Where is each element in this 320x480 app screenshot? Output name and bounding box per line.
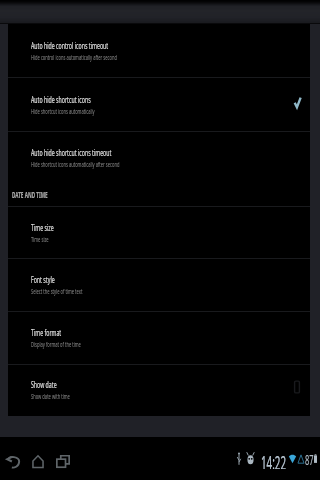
staticText: Font style bbox=[31, 273, 55, 285]
staticText: Auto hide control icons timeout bbox=[31, 39, 109, 51]
button[interactable]: Auto hide shortcut icons bbox=[8, 78, 310, 131]
staticText: Hide control icons automatically after s… bbox=[31, 53, 117, 63]
staticText: Time size bbox=[31, 221, 54, 233]
staticText: 14:22 bbox=[261, 449, 286, 469]
staticText: 87 bbox=[305, 449, 314, 469]
button[interactable]: Auto hide shortcut icons timeout bbox=[8, 132, 310, 183]
staticText: Hide shortcut icons automatically after … bbox=[31, 160, 120, 170]
staticText: DATE AND TIME bbox=[12, 189, 48, 200]
staticText: Auto hide shortcut icons bbox=[31, 93, 91, 105]
button[interactable]: Auto hide control icons timeout bbox=[8, 24, 310, 77]
button[interactable]: Back bbox=[1, 437, 25, 480]
button[interactable]: Time format bbox=[8, 312, 310, 364]
button[interactable]: Time size bbox=[8, 207, 310, 258]
button[interactable]: Font style bbox=[8, 259, 310, 311]
staticText: Show date bbox=[31, 378, 57, 390]
staticText: Select the style of time text bbox=[31, 287, 83, 297]
button[interactable]: Home bbox=[25, 437, 50, 480]
staticText: Display format of the time bbox=[31, 340, 81, 350]
staticText: Hide shortcut icons automatically bbox=[31, 107, 95, 117]
staticText: Show date with time bbox=[31, 392, 70, 402]
staticText: Auto hide shortcut icons timeout bbox=[31, 146, 112, 158]
button[interactable]: Recent apps bbox=[50, 437, 75, 480]
button[interactable]: Show date bbox=[8, 365, 310, 415]
staticText: Time size bbox=[31, 235, 49, 245]
staticText: Time format bbox=[31, 326, 62, 338]
